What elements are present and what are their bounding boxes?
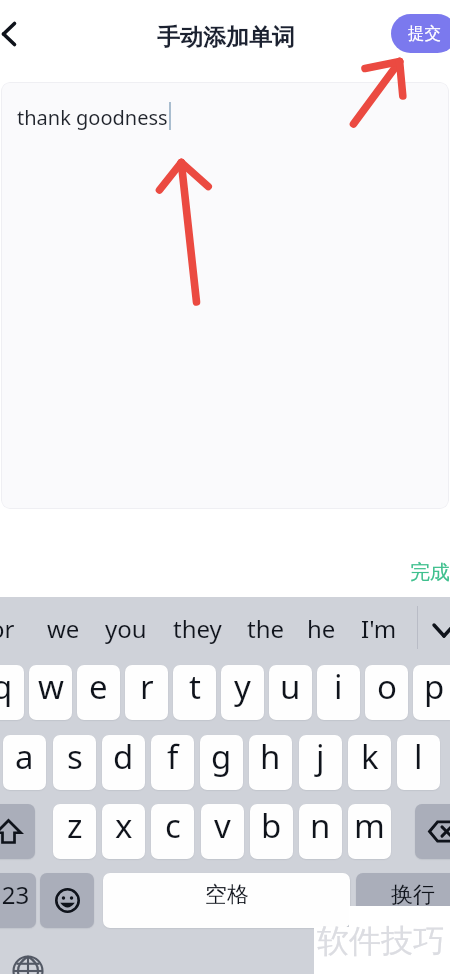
staticText: u [280, 665, 301, 709]
staticText: o [377, 665, 397, 709]
button[interactable]: Change keyboard [13, 956, 43, 974]
staticText: p [424, 665, 445, 709]
staticText: j [316, 735, 325, 779]
staticText: d [113, 735, 134, 779]
staticText: z [67, 804, 83, 848]
staticText: f [167, 735, 179, 779]
staticText: thank goodness [17, 104, 168, 131]
staticText: we [47, 612, 80, 645]
staticText: w [38, 665, 64, 709]
button[interactable]: u [269, 665, 312, 720]
staticText: I'm [361, 612, 397, 645]
staticText: 提交 [408, 23, 441, 44]
staticText: 123 [0, 878, 30, 911]
button[interactable]: k [348, 735, 391, 790]
button[interactable]: z [53, 804, 96, 859]
button[interactable]: t [173, 665, 216, 720]
button[interactable]: p [413, 665, 450, 720]
button[interactable]: d [102, 735, 145, 790]
staticText: he [307, 612, 336, 645]
button[interactable]: 换行 [356, 873, 450, 928]
staticText: i [334, 665, 343, 709]
button[interactable] [40, 873, 94, 928]
button[interactable]: Hide keyboard [430, 617, 450, 641]
button[interactable]: n [299, 804, 342, 859]
button[interactable]: 空格 [103, 873, 350, 928]
button[interactable]: q [0, 665, 24, 720]
button[interactable]: j [299, 735, 342, 790]
staticText: b [261, 804, 282, 848]
button[interactable]: a [3, 735, 46, 790]
button[interactable]: thank goodness [1, 82, 449, 509]
staticText: 空格 [205, 881, 249, 909]
button[interactable]: e [77, 665, 120, 720]
staticText: the [247, 612, 285, 645]
button[interactable]: v [201, 804, 244, 859]
button[interactable]: l [397, 735, 440, 790]
staticText: 手动添加单词 [157, 23, 295, 52]
button[interactable]: he [307, 606, 336, 650]
staticText: r [140, 665, 154, 709]
button[interactable] [0, 804, 35, 859]
staticText: or [0, 612, 15, 645]
staticText: m [354, 804, 385, 848]
button[interactable]: 提交 [391, 14, 450, 53]
button[interactable]: I'm [361, 606, 397, 650]
staticText: you [105, 612, 147, 645]
staticText: 换行 [391, 881, 435, 909]
button[interactable]: 完成 [410, 560, 450, 585]
button[interactable]: f [151, 735, 194, 790]
staticText: k [361, 735, 379, 779]
button[interactable]: you [105, 606, 147, 650]
staticText: h [260, 735, 281, 779]
staticText: e [89, 665, 108, 709]
staticText: c [165, 804, 181, 848]
button[interactable]: c [151, 804, 194, 859]
staticText: g [211, 735, 232, 779]
button[interactable]: 123 [0, 873, 36, 928]
staticText: s [67, 735, 83, 779]
button[interactable]: s [53, 735, 96, 790]
button[interactable]: x [102, 804, 145, 859]
staticText: q [0, 665, 13, 709]
button[interactable]: b [250, 804, 293, 859]
staticText: t [189, 665, 201, 709]
button[interactable]: i [317, 665, 360, 720]
staticText: l [414, 735, 423, 779]
staticText: n [310, 804, 331, 848]
button[interactable]: o [365, 665, 408, 720]
staticText: v [214, 804, 231, 848]
staticText: 软件技巧 [317, 921, 445, 961]
button[interactable]: y [221, 665, 264, 720]
button[interactable]: we [47, 606, 80, 650]
button[interactable]: g [200, 735, 243, 790]
button[interactable]: w [29, 665, 72, 720]
button[interactable]: h [249, 735, 292, 790]
button[interactable]: m [348, 804, 391, 859]
staticText: y [234, 665, 251, 709]
staticText: they [173, 612, 222, 645]
button[interactable]: the [247, 606, 285, 650]
button[interactable]: they [173, 606, 222, 650]
staticText: a [15, 735, 34, 779]
staticText: 完成 [410, 560, 450, 585]
staticText: x [115, 804, 133, 848]
button[interactable] [415, 804, 450, 859]
button[interactable]: or [0, 606, 15, 650]
button[interactable]: r [125, 665, 168, 720]
button[interactable]: Back [0, 13, 29, 55]
